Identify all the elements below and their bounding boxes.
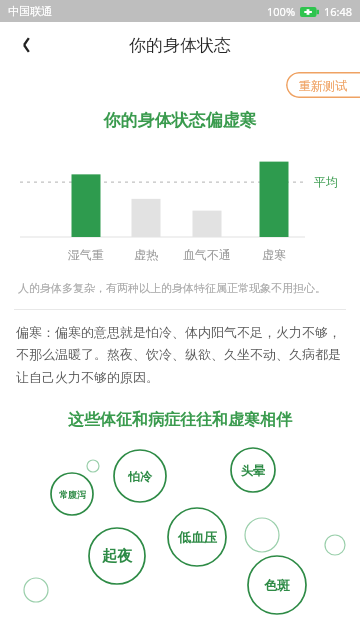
button[interactable]: 色斑	[248, 556, 306, 614]
button[interactable]: 常腹泻	[51, 473, 93, 515]
staticText: 16:48	[324, 4, 353, 19]
staticText: 你的身体状态偏虚寒	[0, 110, 360, 131]
button[interactable]: Back	[4, 23, 48, 67]
staticText: 偏寒：偏寒的意思就是怕冷、体内阳气不足，火力不够，不那么温暖了。熬夜、饮冷、纵欲…	[16, 324, 344, 386]
staticText: 怕冷	[128, 469, 152, 484]
button[interactable]: 怕冷	[114, 450, 166, 502]
staticText: 湿气重	[68, 247, 104, 262]
button[interactable]: 重新测试	[286, 72, 360, 98]
staticText: 100%	[267, 4, 296, 19]
staticText: 头晕	[241, 463, 265, 478]
staticText: 你的身体状态	[129, 35, 231, 56]
staticText: 这些体征和病症往往和虚寒相伴	[0, 410, 360, 430]
staticText: 色斑	[264, 577, 290, 593]
staticText: 重新测试	[299, 78, 347, 93]
staticText: 起夜	[102, 547, 132, 566]
staticText: 常腹泻	[59, 489, 86, 500]
staticText: 虚寒	[262, 247, 286, 262]
button[interactable]: 起夜	[89, 528, 145, 584]
staticText: 虚热	[134, 247, 158, 262]
staticText: 血气不通	[183, 247, 231, 262]
staticText: 低血压	[178, 529, 217, 545]
staticText: 人的身体多复杂，有两种以上的身体特征属正常现象不用担心。	[18, 281, 326, 295]
button[interactable]: 头晕	[231, 448, 275, 492]
button[interactable]: 低血压	[168, 508, 226, 566]
staticText: 平均	[314, 174, 338, 189]
staticText: 中国联通	[8, 4, 52, 18]
